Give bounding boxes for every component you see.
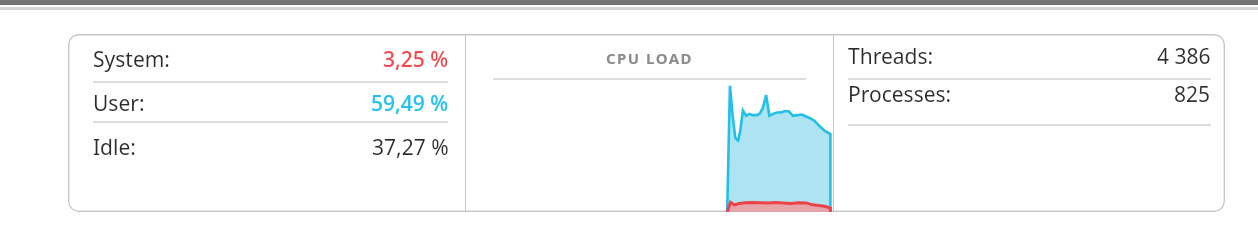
button[interactable]: Processes: — [834, 72, 1225, 117]
staticText: Processes: — [848, 80, 952, 109]
staticText: Idle: — [93, 133, 136, 162]
staticText: Threads: — [848, 42, 934, 71]
staticText: CPU LOAD — [466, 48, 833, 68]
button[interactable]: Threads: — [834, 34, 1225, 79]
other: CPU load graph — [724, 82, 832, 212]
staticText: User: — [93, 89, 145, 118]
button[interactable]: System: — [68, 38, 465, 81]
staticText: 37,27 % — [372, 133, 449, 162]
staticText: 3,25 % — [383, 45, 449, 74]
staticText: 59,49 % — [371, 89, 449, 118]
button[interactable]: User: — [68, 82, 465, 125]
button[interactable]: Idle: — [68, 126, 465, 169]
staticText: 825 — [1174, 80, 1211, 109]
staticText: 4 386 — [1157, 42, 1211, 71]
staticText: System: — [93, 45, 170, 74]
